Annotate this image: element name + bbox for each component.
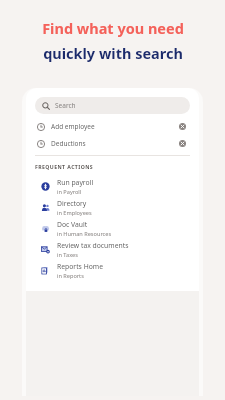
staticText: in Human Resources bbox=[57, 230, 112, 238]
button[interactable]: Remove Deductions bbox=[177, 138, 188, 149]
staticText: in Payroll bbox=[57, 188, 82, 196]
staticText: FREQUENT ACTIONS bbox=[35, 163, 94, 170]
staticText: in Reports bbox=[57, 272, 84, 280]
staticText: Reports Home bbox=[57, 262, 103, 271]
button[interactable]: Run payroll bbox=[35, 176, 190, 197]
staticText: Add employee bbox=[51, 122, 177, 131]
staticText: in Taxes bbox=[57, 251, 78, 259]
button[interactable]: Directory bbox=[35, 197, 190, 218]
staticText: Directory bbox=[57, 199, 87, 208]
staticText: quickly with search bbox=[43, 43, 183, 63]
staticText: Deductions bbox=[51, 139, 177, 148]
staticText: Doc Vault bbox=[57, 220, 88, 229]
staticText: in Employees bbox=[57, 209, 92, 217]
staticText: Find what you need bbox=[42, 18, 184, 38]
button[interactable]: Doc Vault bbox=[35, 218, 190, 239]
button[interactable]: Deductions bbox=[35, 135, 190, 152]
staticText: Run payroll bbox=[57, 178, 94, 187]
button[interactable]: Review tax documents bbox=[35, 239, 190, 260]
button[interactable]: Reports Home bbox=[35, 260, 190, 281]
button[interactable]: Remove Add employee bbox=[177, 121, 188, 132]
button[interactable]: Add employee bbox=[35, 118, 190, 135]
button[interactable]: Search bbox=[35, 97, 190, 114]
staticText: Review tax documents bbox=[57, 241, 129, 250]
staticText: Search bbox=[55, 101, 76, 110]
